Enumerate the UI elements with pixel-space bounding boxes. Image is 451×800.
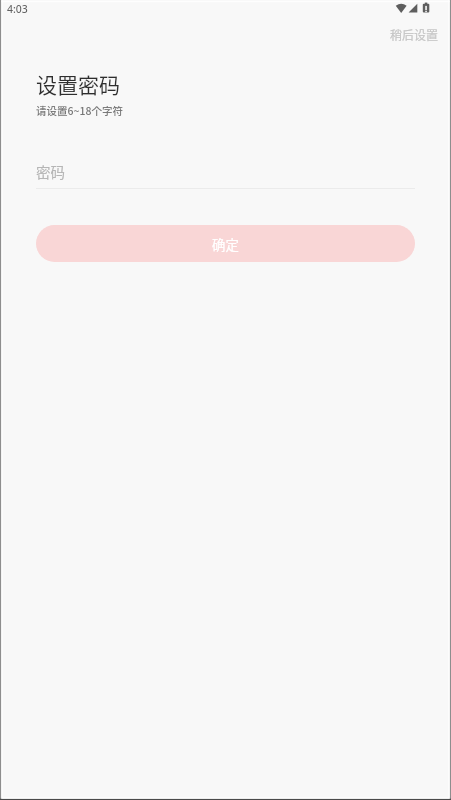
button[interactable]: 稍后设置 [378, 20, 451, 49]
staticText: 密码 [36, 161, 65, 182]
staticText: 确定 [212, 234, 239, 253]
staticText: 请设置6~18个字符 [36, 103, 123, 118]
button[interactable]: 确定 [36, 225, 415, 262]
button[interactable]: 密码 [36, 156, 415, 186]
other: Wi-Fi, mobile signal and battery status [394, 2, 432, 15]
staticText: 稍后设置 [390, 26, 439, 43]
staticText: 设置密码 [36, 69, 120, 99]
staticText: 4:03 [7, 2, 28, 16]
